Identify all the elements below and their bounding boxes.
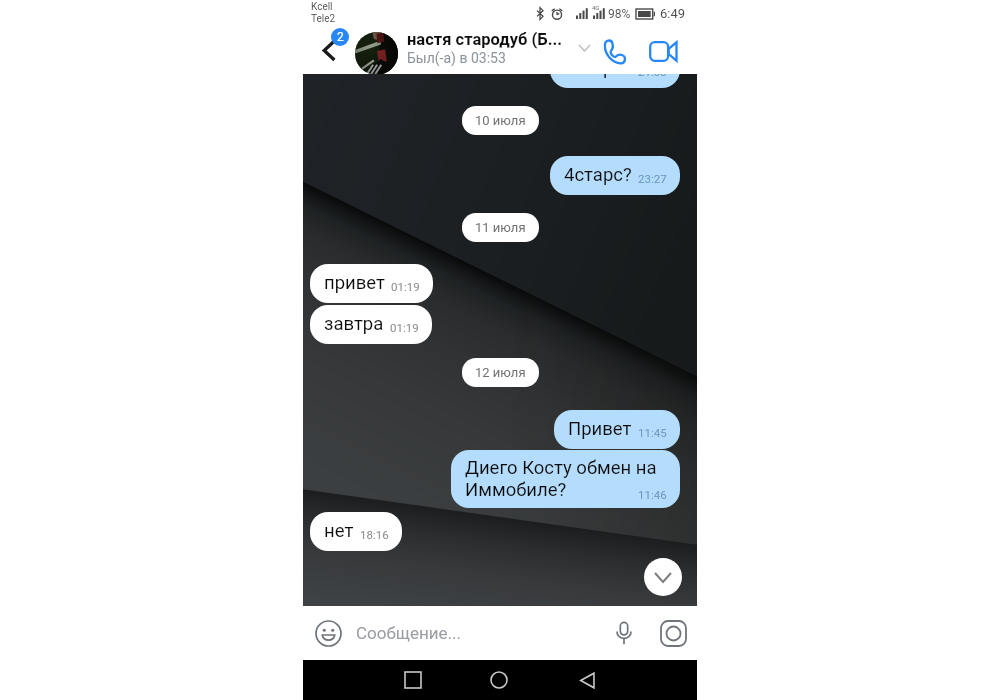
staticText: Сообщение...	[356, 623, 461, 643]
staticText: 11:45	[638, 426, 667, 439]
button[interactable]: Voice message	[607, 616, 641, 650]
button[interactable]: Back	[313, 28, 355, 74]
button[interactable]: 4старс?	[550, 74, 680, 88]
button[interactable]: нет	[310, 512, 402, 551]
button[interactable]: 10 июля	[475, 113, 526, 128]
staticText: нет	[324, 520, 354, 542]
button[interactable]: 11 июля	[475, 220, 526, 235]
staticText: Kcell	[311, 1, 333, 13]
button[interactable]: Home	[477, 660, 521, 700]
staticText: 12 июля	[475, 365, 526, 380]
staticText: 98%	[608, 7, 631, 21]
staticText: Был(-а) в 03:53	[407, 50, 506, 66]
staticText: завтра	[324, 313, 384, 335]
button[interactable]: Диего Косту обмен на Иммобиле?	[451, 450, 680, 508]
staticText: Tele2	[311, 13, 336, 25]
staticText: 21:03	[638, 74, 667, 78]
staticText: 11:46	[638, 488, 667, 501]
staticText: 23:27	[638, 172, 667, 185]
button[interactable]: Привет	[554, 410, 680, 449]
staticText: 4G	[592, 4, 600, 11]
staticText: привет	[324, 272, 385, 294]
button[interactable]: Profile photo	[355, 32, 398, 75]
button[interactable]: Scroll to bottom	[644, 558, 682, 596]
button[interactable]: Video call	[640, 28, 686, 74]
staticText: 2	[337, 30, 344, 44]
button[interactable]: Call	[592, 28, 638, 74]
button[interactable]: Back	[565, 660, 609, 700]
staticText: настя стародуб (Б...	[407, 30, 563, 49]
staticText: 4старс?	[564, 164, 632, 186]
button[interactable]: Camera	[656, 616, 690, 650]
button[interactable]: 4старс?	[550, 156, 680, 195]
staticText: 10 июля	[475, 113, 526, 128]
staticText: Привет	[568, 418, 632, 440]
staticText: 01:19	[390, 321, 419, 334]
staticText: Диего Косту обмен на Иммобиле?	[465, 457, 667, 501]
button[interactable]: Recent apps	[391, 660, 435, 700]
button[interactable]: 12 июля	[475, 365, 526, 380]
staticText: 4старс?	[564, 74, 632, 79]
button[interactable]: привет	[310, 264, 433, 303]
staticText: 18:16	[360, 528, 389, 541]
staticText: 11 июля	[475, 220, 526, 235]
button[interactable]: завтра	[310, 305, 432, 344]
staticText: 6:49	[660, 6, 686, 21]
button[interactable]: Emoji	[311, 616, 345, 650]
staticText: 01:19	[391, 280, 420, 293]
